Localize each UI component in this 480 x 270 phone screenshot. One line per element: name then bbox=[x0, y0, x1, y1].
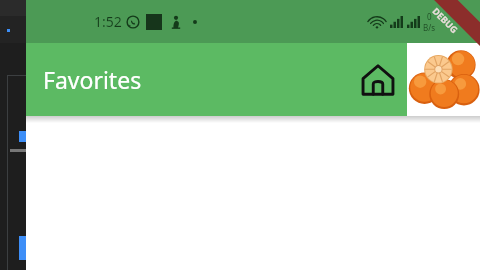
button[interactable]: Oranges bbox=[407, 43, 480, 116]
staticText: 1:52 bbox=[94, 12, 122, 31]
staticText: B/s bbox=[423, 22, 436, 33]
staticText: Favorites bbox=[43, 64, 142, 95]
staticText: DEBUG bbox=[430, 5, 461, 35]
staticText: 0 bbox=[427, 11, 432, 22]
button[interactable]: Home bbox=[351, 53, 405, 107]
